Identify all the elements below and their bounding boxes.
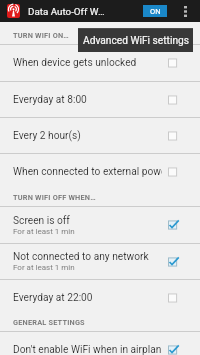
staticText: GENERAL SETTINGS	[13, 318, 85, 327]
staticText: Every 2 hour(s)	[13, 130, 81, 142]
button[interactable]: When connected to external power	[0, 154, 200, 189]
button[interactable]: Every 2 hour(s)	[0, 118, 200, 153]
staticText: For at least 1 min	[13, 263, 75, 272]
staticText: TURN WIFI ON…	[13, 31, 69, 40]
button[interactable]: TURN WIFI OFF WHEN…	[0, 189, 200, 206]
button[interactable]: Not connected to any network	[0, 244, 200, 279]
staticText: Everyday at 8:00	[13, 94, 87, 106]
staticText: For at least 1 min	[13, 227, 75, 236]
staticText: ON	[150, 7, 161, 16]
staticText: Not connected to any network	[13, 251, 149, 263]
staticText: Screen is off	[13, 215, 70, 227]
staticText: Everyday at 22:00	[13, 292, 93, 304]
button[interactable]: When device gets unlocked	[0, 45, 200, 81]
staticText: TURN WIFI OFF WHEN…	[13, 193, 96, 202]
button[interactable]: Advanced WiFi settings	[78, 28, 193, 52]
button[interactable]: More options	[176, 0, 194, 22]
button[interactable]: TURN WIFI ON…	[0, 22, 200, 44]
staticText: When connected to external power	[13, 166, 162, 178]
button[interactable]: ON	[143, 5, 167, 17]
button[interactable]: Don't enable WiFi when in airplane mode	[0, 332, 200, 355]
button[interactable]: Everyday at 22:00	[0, 280, 200, 315]
staticText: Advanced WiFi settings	[83, 35, 189, 47]
button[interactable]: Everyday at 8:00	[0, 82, 200, 117]
staticText: Don't enable WiFi when in airplane mode	[13, 344, 162, 355]
staticText: Data Auto-Off W…	[28, 6, 105, 17]
staticText: When device gets unlocked	[13, 57, 137, 69]
button[interactable]: Screen is off	[0, 207, 200, 243]
button[interactable]: GENERAL SETTINGS	[0, 315, 200, 331]
